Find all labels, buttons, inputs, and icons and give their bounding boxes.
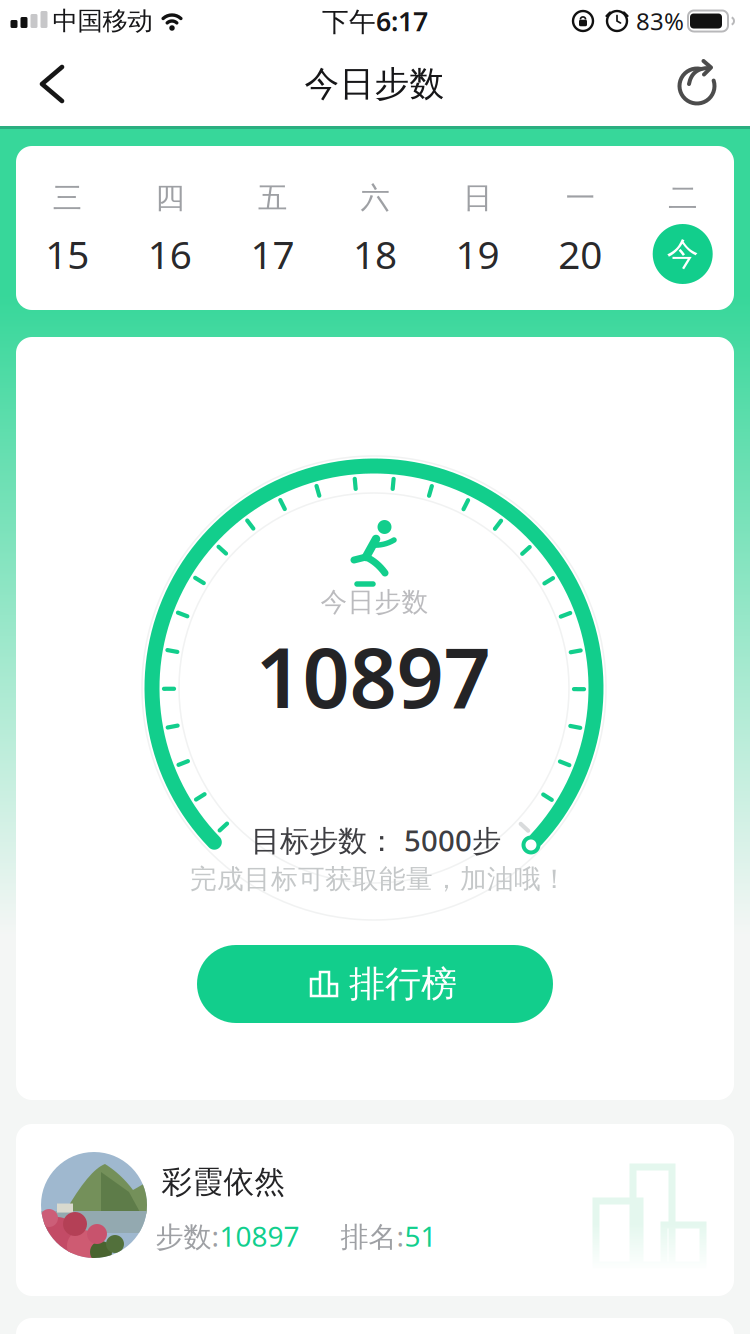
staticText: 彩霞依然 bbox=[161, 1163, 285, 1201]
staticText: 一 bbox=[566, 180, 595, 216]
button[interactable]: 彩霞依然 bbox=[16, 1124, 734, 1296]
staticText: 三 bbox=[53, 180, 82, 216]
staticText: 二 bbox=[668, 180, 697, 216]
staticText: 五 bbox=[258, 180, 287, 216]
staticText: 排行榜 bbox=[349, 962, 457, 1006]
staticText: 15 bbox=[45, 228, 89, 280]
staticText: 10897 bbox=[255, 621, 490, 731]
staticText: 中国移动 bbox=[52, 5, 152, 36]
staticText: 83% bbox=[636, 5, 684, 37]
staticText: 10897 bbox=[219, 1217, 299, 1255]
staticText: 今日步数 bbox=[320, 586, 428, 618]
staticText: 今 bbox=[667, 234, 699, 274]
staticText: 19 bbox=[456, 228, 500, 280]
staticText: 18 bbox=[353, 228, 397, 280]
staticText: 步数: bbox=[155, 1217, 219, 1255]
button[interactable]: 排行榜 bbox=[197, 945, 553, 1023]
button[interactable]: 今 bbox=[653, 224, 713, 284]
button[interactable]: Back bbox=[24, 57, 80, 111]
staticText: 排名: bbox=[340, 1217, 404, 1255]
staticText: 16 bbox=[148, 228, 192, 280]
button[interactable]: Refresh bbox=[669, 56, 725, 112]
staticText: 目标步数： 5000步 bbox=[251, 820, 501, 859]
staticText: 完成目标可获取能量，加油哦！ bbox=[190, 863, 568, 895]
staticText: 17 bbox=[250, 228, 294, 280]
staticText: 下午6:17 bbox=[322, 3, 428, 39]
staticText: 六 bbox=[360, 180, 389, 216]
staticText: 20 bbox=[558, 228, 602, 280]
staticText: 今日步数 bbox=[304, 63, 444, 105]
staticText: 四 bbox=[155, 180, 184, 216]
staticText: 日 bbox=[463, 180, 492, 216]
staticText: 51 bbox=[404, 1217, 436, 1255]
